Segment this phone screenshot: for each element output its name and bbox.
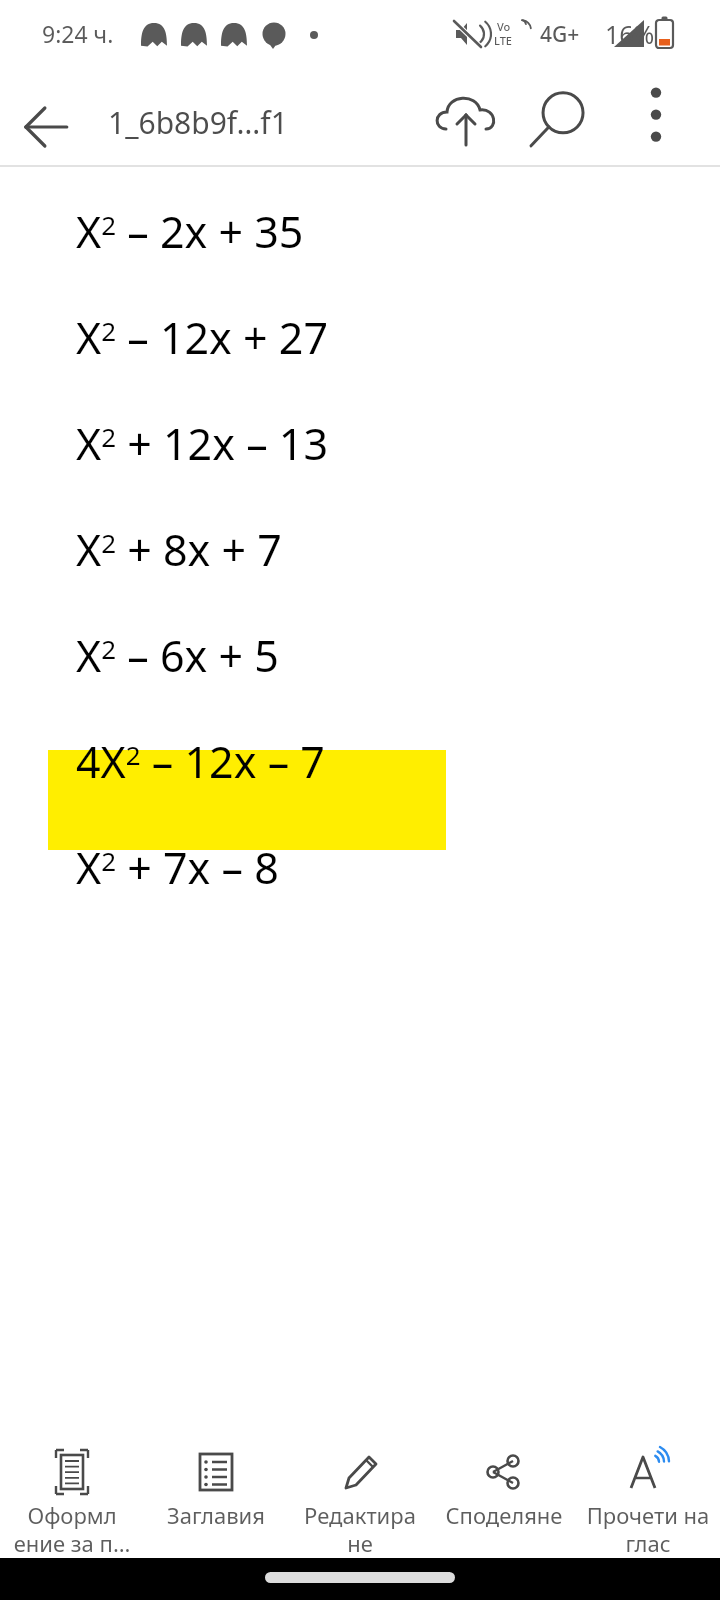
staticText: Заглавия — [144, 1500, 288, 1530]
staticText: 4X2 – 12x – 7 — [76, 732, 325, 791]
staticText: X2 + 12x – 13 — [76, 414, 329, 473]
button[interactable]: More options — [622, 84, 690, 152]
staticText: X2 – 2x + 35 — [76, 202, 304, 261]
staticText: 1_6b8b9f…f1 — [108, 102, 288, 143]
staticText: Споделяне — [432, 1500, 576, 1530]
button[interactable]: Заглавия — [144, 1418, 288, 1558]
button[interactable]: Споделяне — [432, 1418, 576, 1558]
staticText: 9:24 ч. — [42, 18, 114, 49]
staticText: X2 – 6x + 5 — [76, 626, 279, 685]
staticText: Редактира не — [288, 1500, 432, 1558]
button[interactable]: Прочети на глас — [576, 1418, 720, 1558]
staticText: X2 – 12x + 27 — [76, 308, 329, 367]
staticText: 4G+ — [540, 20, 580, 49]
staticText: Vo — [497, 19, 511, 34]
button[interactable]: Редактира не — [288, 1418, 432, 1558]
staticText: 16% — [605, 17, 655, 51]
staticText: LTE — [494, 33, 512, 48]
button[interactable]: Оформл ение за п… — [0, 1418, 144, 1558]
button[interactable]: Back — [14, 94, 80, 160]
staticText: Оформл ение за п… — [0, 1500, 144, 1558]
staticText: X2 + 7x – 8 — [76, 838, 279, 897]
staticText: X2 + 8x + 7 — [76, 520, 282, 579]
button[interactable]: Search — [522, 84, 594, 156]
staticText: Прочети на глас — [576, 1500, 720, 1558]
button[interactable]: Upload to cloud — [432, 84, 508, 160]
